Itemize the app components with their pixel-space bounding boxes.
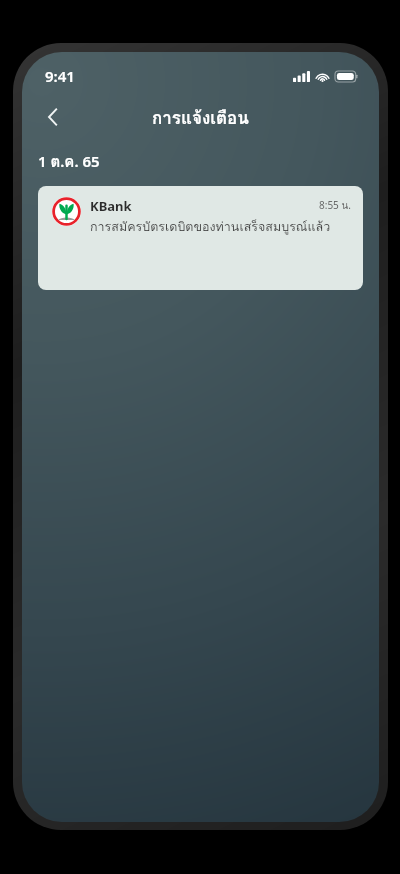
staticText: 1 ต.ค. 65 <box>38 150 100 174</box>
staticText: การสมัครบัตรเดบิตของท่านเสร็จสมบูรณ์แล้ว <box>90 217 331 237</box>
staticText: KBank <box>90 197 132 215</box>
staticText: 9:41 <box>45 66 75 86</box>
button[interactable]: KBank <box>38 186 363 290</box>
button[interactable]: Back <box>32 96 74 138</box>
staticText: การแจ้งเตือน <box>152 104 249 131</box>
staticText: 8:55 น. <box>319 198 351 214</box>
